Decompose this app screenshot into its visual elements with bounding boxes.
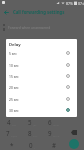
staticText: Forward when unanswered bbox=[8, 25, 51, 29]
staticText: 25 sec bbox=[9, 97, 19, 101]
staticText: 4 bbox=[7, 118, 11, 126]
button[interactable]: 5 bbox=[21, 116, 42, 128]
staticText: 9 bbox=[48, 129, 52, 137]
staticText: 0 bbox=[29, 141, 33, 149]
staticText: 15 sec bbox=[9, 74, 19, 78]
staticText: 7 bbox=[6, 129, 10, 137]
staticText: Delay bbox=[9, 42, 21, 48]
button[interactable]: 7 bbox=[0, 127, 21, 139]
button[interactable]: 20 sec bbox=[6, 81, 77, 92]
staticText: 5 sec bbox=[9, 51, 17, 55]
button[interactable]: 15 sec bbox=[6, 70, 77, 81]
button[interactable]: 6 bbox=[42, 116, 63, 128]
button[interactable]: Call bbox=[69, 139, 79, 149]
staticText: * bbox=[10, 141, 14, 149]
staticText: 10 sec bbox=[9, 63, 19, 67]
button[interactable]: 5 sec bbox=[6, 47, 77, 58]
button[interactable]: 4 bbox=[0, 116, 21, 128]
button[interactable]: 10 sec bbox=[6, 59, 77, 70]
staticText: # bbox=[52, 141, 56, 149]
staticText: 5 bbox=[28, 118, 32, 126]
button[interactable]: Backspace bbox=[68, 127, 79, 138]
button[interactable]: 0 bbox=[21, 139, 42, 150]
button[interactable]: # bbox=[42, 139, 63, 150]
button[interactable]: 9 bbox=[42, 127, 63, 139]
staticText: 20 sec bbox=[9, 85, 19, 89]
staticText: 07:44 bbox=[78, 1, 84, 6]
button[interactable]: Forward when unanswered bbox=[0, 21, 84, 32]
staticText: 30 sec bbox=[9, 108, 19, 112]
button[interactable]: Back bbox=[0, 6, 12, 18]
button[interactable]: 8 bbox=[21, 127, 42, 139]
staticText: Call forwarding settings bbox=[13, 9, 65, 15]
staticText: 8 bbox=[28, 129, 32, 137]
button[interactable]: 30 sec bbox=[6, 104, 77, 115]
staticText: 6 bbox=[48, 118, 52, 126]
staticText: 87% bbox=[66, 1, 73, 6]
button[interactable]: 25 sec bbox=[6, 93, 77, 104]
button[interactable]: * bbox=[0, 139, 21, 150]
